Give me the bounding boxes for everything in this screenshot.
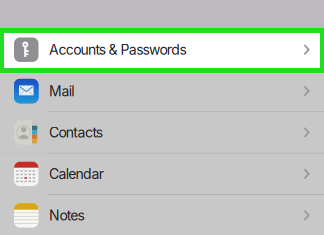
button[interactable]: Mail <box>0 71 324 111</box>
button[interactable]: Calendar <box>0 154 324 194</box>
staticText: Notes <box>49 207 85 224</box>
staticText: Calendar <box>49 165 104 182</box>
button[interactable]: Accounts & Passwords <box>0 29 324 70</box>
staticText: Accounts & Passwords <box>49 41 187 58</box>
staticText: Mail <box>49 83 74 99</box>
button[interactable]: Contacts <box>0 112 324 153</box>
button[interactable]: Notes <box>0 195 324 235</box>
staticText: Contacts <box>49 124 103 141</box>
